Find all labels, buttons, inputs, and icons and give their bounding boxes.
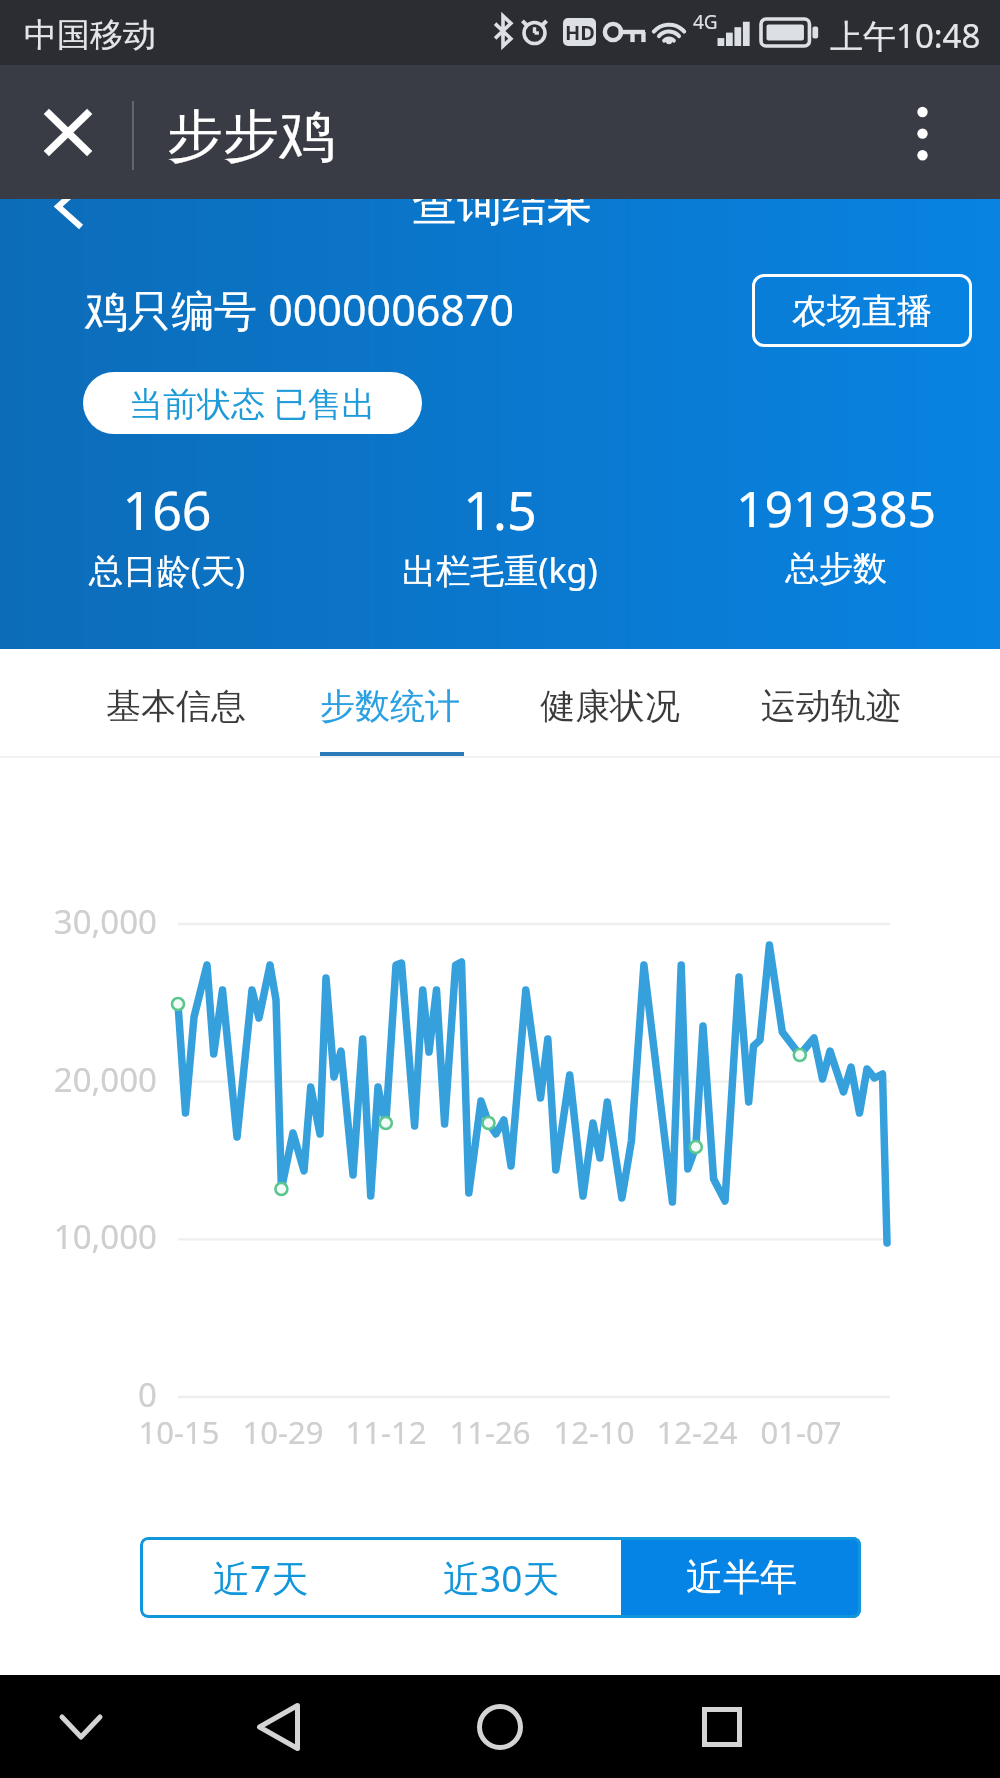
staticText: 当前状态 已售出 bbox=[129, 380, 376, 426]
staticText: 12-24 bbox=[644, 1411, 750, 1453]
staticText: 总步数 bbox=[666, 547, 1000, 590]
button[interactable]: 基本信息 bbox=[70, 649, 282, 770]
staticText: 10,000 bbox=[0, 1214, 157, 1259]
staticText: 10-15 bbox=[126, 1411, 232, 1453]
staticText: 20,000 bbox=[0, 1057, 157, 1102]
staticText: HD bbox=[565, 19, 595, 46]
staticText: 基本信息 bbox=[70, 684, 282, 728]
staticText: 总日龄(天) bbox=[0, 547, 337, 593]
button[interactable]: Hide keyboard bbox=[41, 1690, 121, 1764]
staticText: 01-07 bbox=[748, 1411, 854, 1453]
staticText: 11-12 bbox=[333, 1411, 439, 1453]
staticText: 166 bbox=[0, 474, 337, 545]
staticText: 上午10:48 bbox=[830, 13, 981, 58]
staticText: 出栏毛重(kg) bbox=[330, 547, 670, 593]
button[interactable]: Home bbox=[460, 1690, 540, 1764]
staticText: 近半年 bbox=[686, 1554, 797, 1601]
button[interactable]: 近30天 bbox=[381, 1537, 621, 1618]
button[interactable]: 近7天 bbox=[140, 1537, 381, 1618]
staticText: 0 bbox=[0, 1372, 157, 1417]
button[interactable]: More options bbox=[882, 91, 964, 173]
button[interactable]: Back bbox=[238, 1690, 318, 1764]
staticText: 11-26 bbox=[437, 1411, 543, 1453]
staticText: 12-10 bbox=[541, 1411, 647, 1453]
staticText: 1919385 bbox=[666, 474, 1000, 542]
staticText: 步步鸡 bbox=[167, 101, 335, 172]
staticText: 鸡只编号 0000006870 bbox=[85, 280, 515, 339]
staticText: 近7天 bbox=[213, 1552, 309, 1603]
staticText: 农场直播 bbox=[792, 289, 932, 333]
button[interactable]: 农场直播 bbox=[752, 274, 972, 347]
staticText: 10-29 bbox=[230, 1411, 336, 1453]
staticText: 4G bbox=[693, 9, 718, 35]
button[interactable]: 当前状态 已售出 bbox=[83, 372, 422, 434]
staticText: 30,000 bbox=[0, 899, 157, 944]
button[interactable]: Close bbox=[25, 91, 110, 173]
staticText: 运动轨迹 bbox=[725, 684, 937, 728]
button[interactable]: Recent apps bbox=[682, 1690, 762, 1764]
staticText: 近30天 bbox=[443, 1552, 560, 1603]
staticText: 步数统计 bbox=[284, 684, 496, 728]
staticText: 中国移动 bbox=[24, 14, 156, 56]
staticText: 健康状况 bbox=[504, 684, 716, 728]
button[interactable]: 健康状况 bbox=[504, 649, 716, 770]
button[interactable]: 步数统计 bbox=[284, 649, 496, 770]
button[interactable]: 运动轨迹 bbox=[725, 649, 937, 770]
staticText: 查询结果 bbox=[412, 199, 592, 234]
button[interactable]: 近半年 bbox=[621, 1537, 861, 1618]
staticText: 1.5 bbox=[330, 474, 670, 545]
